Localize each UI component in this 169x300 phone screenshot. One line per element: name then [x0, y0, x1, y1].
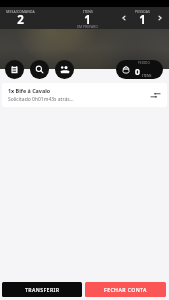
staticText: PESSOAS — [135, 9, 150, 13]
staticText: ITENS — [142, 73, 152, 78]
button[interactable]: TRANSFERIR — [2, 282, 82, 297]
staticText: ITENS — [83, 9, 93, 13]
staticText: TRANSFERIR — [25, 286, 60, 293]
button[interactable]: Transferir item — [148, 88, 162, 102]
button[interactable]: 1x Bife à Cavalo — [2, 83, 167, 107]
button[interactable]: Mais pessoas — [153, 11, 167, 25]
staticText: 2 — [17, 12, 24, 28]
staticText: 0 — [135, 66, 140, 78]
button[interactable]: Itens — [5, 60, 24, 79]
staticText: PEDIDO — [138, 61, 150, 65]
staticText: 1 — [84, 12, 91, 28]
button[interactable]: Menos pessoas — [117, 11, 131, 25]
button[interactable]: Adicionar pessoa — [55, 60, 74, 79]
staticText: 1x Bife à Cavalo — [8, 87, 51, 94]
button[interactable]: FECHAR CONTA — [85, 282, 166, 297]
staticText: FECHAR CONTA — [104, 286, 147, 293]
button[interactable]: PEDIDO — [116, 60, 163, 79]
staticText: EM PREPARO — [77, 24, 98, 29]
button[interactable]: Buscar — [30, 60, 49, 79]
staticText: Solicitado 0h01m43s atrás... — [8, 96, 74, 103]
staticText: MESA/COMANDA — [6, 9, 35, 13]
staticText: 1 — [139, 12, 146, 28]
